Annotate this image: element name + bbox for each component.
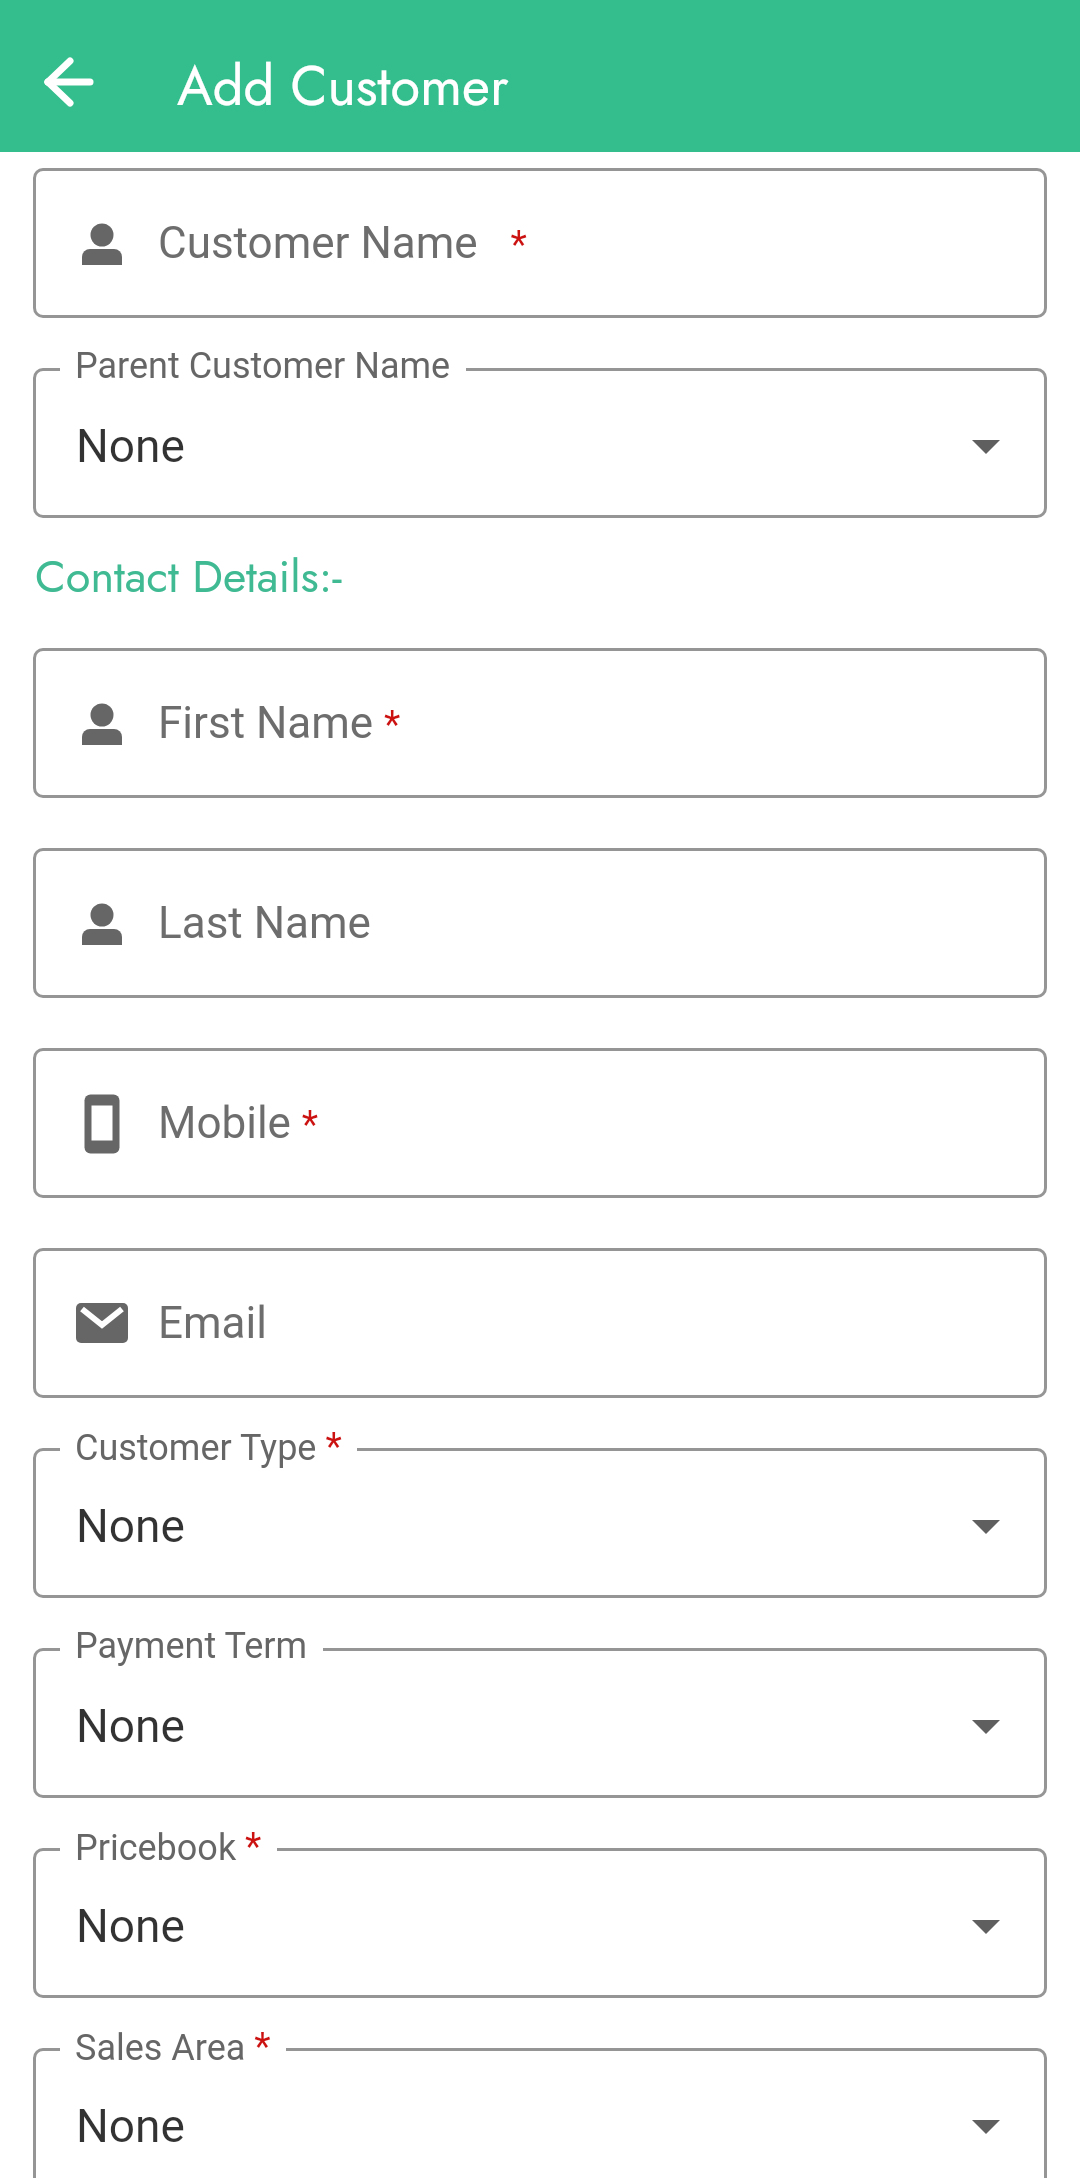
staticText: None bbox=[76, 2099, 185, 2153]
staticText: None bbox=[76, 1899, 185, 1953]
staticText: Add Customer bbox=[177, 47, 509, 125]
staticText: None bbox=[76, 419, 185, 473]
staticText: Contact Details:- bbox=[35, 544, 342, 609]
staticText: Sales Area * bbox=[75, 2025, 271, 2070]
staticText: Email bbox=[158, 1297, 267, 1349]
staticText: Customer Name * bbox=[158, 217, 527, 269]
staticText: Parent Customer Name bbox=[75, 345, 451, 387]
staticText: Payment Term bbox=[75, 1625, 308, 1667]
staticText: First Name * bbox=[158, 697, 401, 749]
staticText: Customer Type * bbox=[75, 1425, 342, 1470]
staticText: Mobile * bbox=[158, 1097, 319, 1149]
staticText: None bbox=[76, 1499, 185, 1553]
staticText: None bbox=[76, 1699, 185, 1753]
staticText: Last Name bbox=[158, 897, 371, 949]
staticText: Pricebook * bbox=[75, 1825, 262, 1870]
